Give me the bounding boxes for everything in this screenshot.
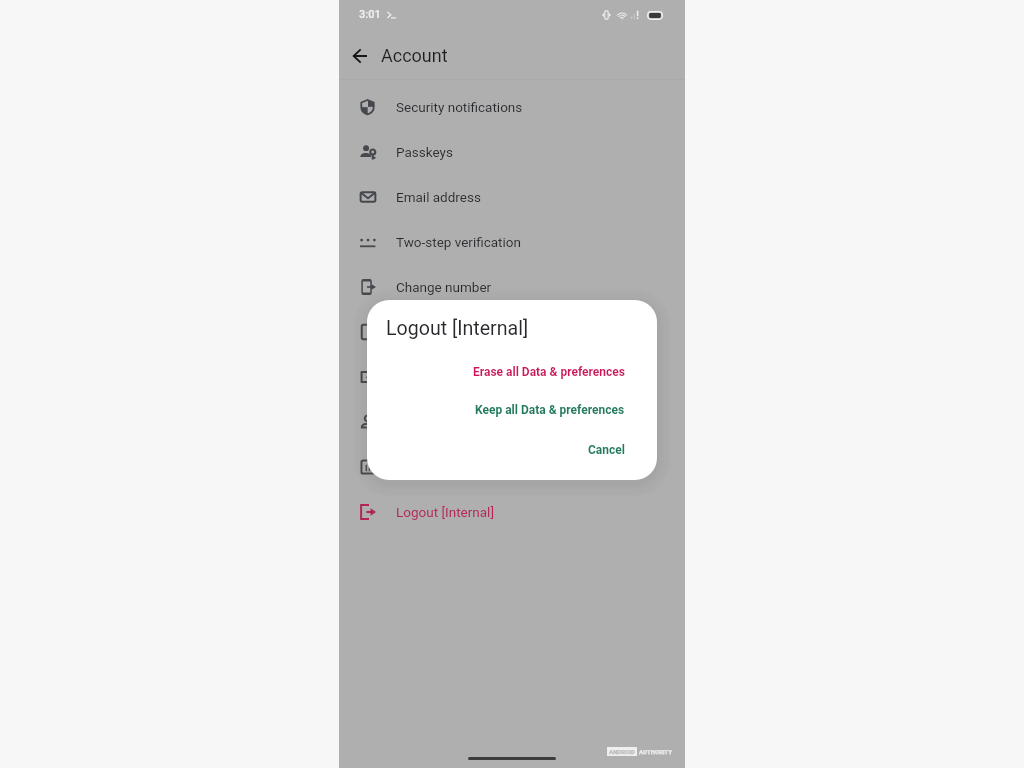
staticText: Change number <box>396 279 492 295</box>
button[interactable]: Back <box>339 37 375 73</box>
button[interactable]: Add account <box>339 354 685 399</box>
button[interactable]: Change number <box>339 399 685 444</box>
button[interactable]: Delete account <box>339 444 685 489</box>
staticText: Account <box>381 45 448 66</box>
staticText: Request account info <box>396 324 524 340</box>
button[interactable]: Email address <box>339 174 685 219</box>
button[interactable]: Erase all Data & preferences <box>367 358 657 386</box>
staticText: Email address <box>396 189 481 205</box>
button[interactable]: Passkeys <box>339 129 685 174</box>
button[interactable]: Cancel <box>367 436 657 464</box>
staticText: Erase all Data & preferences <box>473 365 625 379</box>
button[interactable]: Security notifications <box>339 84 685 129</box>
staticText: ANDROID <box>609 748 635 755</box>
staticText: Keep all Data & preferences <box>475 403 625 417</box>
staticText: Logout [Internal] <box>386 317 529 340</box>
button[interactable]: Keep all Data & preferences <box>367 396 657 424</box>
staticText: Logout [Internal] <box>396 504 494 520</box>
staticText: Security notifications <box>396 99 523 115</box>
staticText: 3:01 <box>359 8 381 21</box>
button[interactable]: Change number <box>339 264 685 309</box>
staticText: AUTHORITY <box>639 748 673 755</box>
staticText: Cancel <box>588 443 625 457</box>
staticText: Passkeys <box>396 144 453 160</box>
button[interactable]: Two-step verification <box>339 219 685 264</box>
staticText: Two-step verification <box>396 234 521 250</box>
button[interactable]: Logout [Internal] <box>339 489 685 534</box>
button[interactable]: Request account info <box>339 309 685 354</box>
